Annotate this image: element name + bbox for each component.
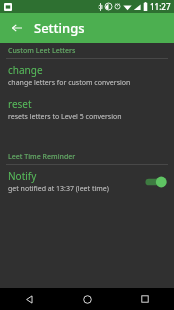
staticText: change letters for custom conversion <box>8 78 131 88</box>
button[interactable]: Recents <box>116 288 174 310</box>
staticText: Notify <box>8 169 37 183</box>
staticText: change <box>8 63 43 77</box>
staticText: Settings <box>34 19 85 37</box>
staticText: get notified at 13:37 (leet time) <box>8 184 109 194</box>
button[interactable]: Home <box>58 288 116 310</box>
staticText: Custom Leet Letters <box>8 46 76 56</box>
other: Notify toggle <box>144 174 168 190</box>
button[interactable]: reset <box>0 93 174 127</box>
button[interactable]: Notify <box>0 165 174 199</box>
button[interactable]: change <box>0 59 174 93</box>
button[interactable]: Back <box>6 17 28 39</box>
staticText: resets letters to Level 5 conversion <box>8 112 122 122</box>
staticText: reset <box>8 97 32 111</box>
staticText: 11:27 <box>150 1 171 12</box>
button[interactable]: Back <box>0 288 58 310</box>
staticText: Leet Time Reminder <box>8 152 76 162</box>
